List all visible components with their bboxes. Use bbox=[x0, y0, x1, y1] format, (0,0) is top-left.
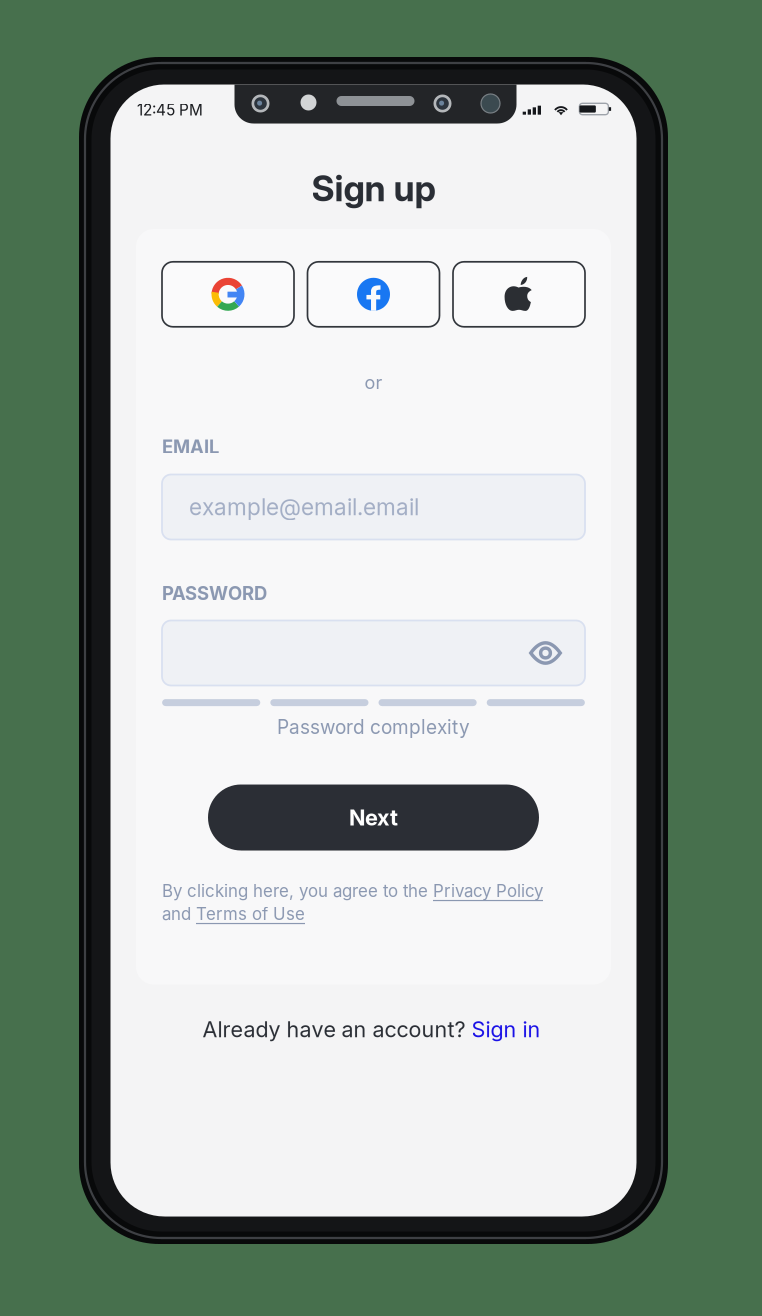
button[interactable]: Continue with Apple bbox=[453, 262, 585, 327]
staticText: EMAIL bbox=[162, 436, 219, 458]
staticText: By clicking here, you agree to the Priva… bbox=[162, 881, 543, 901]
staticText: or bbox=[364, 372, 382, 393]
button[interactable]: Sign in bbox=[471, 1016, 540, 1042]
staticText: 12:45 PM bbox=[137, 101, 203, 119]
staticText: PASSWORD bbox=[162, 582, 267, 604]
button[interactable]: Password, show characters bbox=[162, 620, 585, 685]
button[interactable]: Email address bbox=[162, 474, 585, 539]
button[interactable]: Next bbox=[208, 784, 539, 850]
staticText: example@email.email bbox=[189, 493, 419, 521]
staticText: Already have an account? bbox=[202, 1016, 471, 1042]
button[interactable]: Continue with Facebook bbox=[307, 262, 439, 327]
staticText: Sign up bbox=[311, 167, 435, 210]
staticText: Password complexity bbox=[277, 715, 470, 738]
staticText: Next bbox=[349, 804, 398, 831]
staticText: and Terms of Use bbox=[162, 904, 305, 924]
staticText: Sign in bbox=[471, 1016, 540, 1042]
button[interactable]: Continue with Google bbox=[162, 262, 294, 327]
